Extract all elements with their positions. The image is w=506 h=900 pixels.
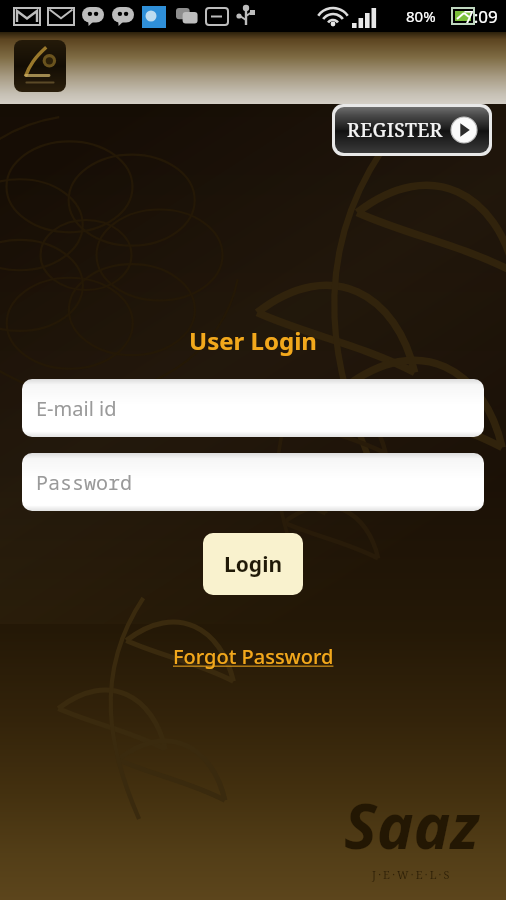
staticText: User Login — [189, 324, 317, 357]
button[interactable]: Saaz Jewels logo — [14, 40, 66, 92]
staticText: REGISTER — [347, 117, 443, 143]
staticText: J·E·W·E·L·S — [372, 867, 452, 882]
staticText: 7:09 — [464, 5, 498, 28]
staticText: Password — [36, 469, 132, 496]
staticText: 80% — [406, 6, 436, 26]
staticText: Forgot Password — [173, 643, 334, 670]
staticText: E-mail id — [36, 395, 117, 422]
staticText: Saaz — [344, 783, 480, 867]
button[interactable]: REGISTER — [335, 107, 489, 153]
staticText: Login — [224, 550, 283, 579]
button[interactable]: Login — [203, 533, 303, 595]
button[interactable]: Forgot Password — [163, 639, 344, 674]
button[interactable]: E-mail id — [22, 379, 484, 437]
button[interactable]: Password — [22, 453, 484, 511]
